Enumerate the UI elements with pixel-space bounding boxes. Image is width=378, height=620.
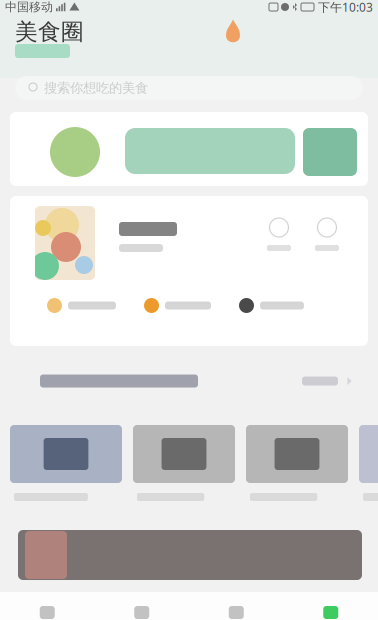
button[interactable]: Promotion: [10, 112, 368, 186]
button[interactable]: Orders: [189, 592, 283, 620]
button[interactable]: Video: [359, 425, 378, 501]
button[interactable]: Video: [10, 425, 122, 501]
button[interactable]: 搜索你想吃的美食: [15, 76, 363, 100]
button[interactable]: History: [314, 218, 340, 251]
button[interactable]: More: [302, 376, 352, 385]
button[interactable]: Video: [246, 425, 348, 501]
staticText: 中国移动: [5, 0, 53, 14]
staticText: 下午10:03: [318, 0, 373, 15]
button[interactable]: Favorites: [266, 218, 292, 251]
button[interactable]: Coupons: [47, 298, 116, 313]
button[interactable]: Hot: [226, 19, 240, 44]
button[interactable]: Video: [133, 425, 235, 501]
staticText: 美食圈: [15, 18, 84, 46]
button[interactable]: Discover: [94, 592, 189, 620]
button[interactable]: Settings: [239, 298, 304, 313]
button[interactable]: Home: [0, 592, 94, 620]
button[interactable]: Promotion banner: [18, 530, 362, 580]
staticText: 搜索你想吃的美食: [44, 80, 148, 96]
button[interactable]: Wallet: [144, 298, 211, 313]
button[interactable]: Profile: [283, 592, 378, 620]
